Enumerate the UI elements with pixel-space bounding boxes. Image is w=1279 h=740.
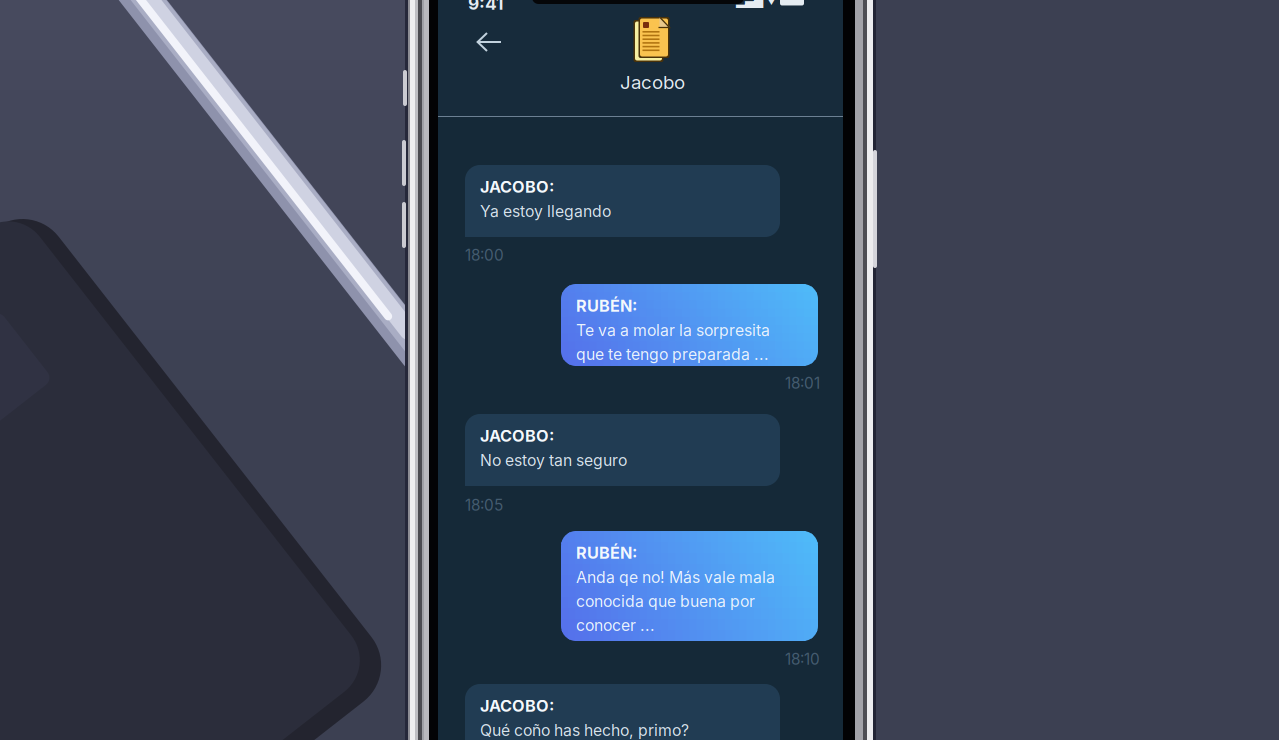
button[interactable]: RUBÉN: [561, 531, 818, 641]
staticText: conocer ... [576, 616, 655, 635]
staticText: Anda qe no! Más vale mala [576, 568, 775, 587]
staticText: 9:41 [468, 0, 503, 14]
staticText: No estoy tan seguro [480, 451, 627, 470]
staticText: Jacobo [620, 71, 685, 94]
staticText: JACOBO: [480, 426, 554, 446]
staticText: RUBÉN: [576, 543, 637, 563]
staticText: Ya estoy llegando [480, 202, 611, 221]
staticText: ▼ [766, 0, 777, 7]
staticText: Qué coño has hecho, primo? [480, 721, 689, 740]
button[interactable]: JACOBO: [465, 414, 780, 486]
button[interactable]: RUBÉN: [561, 284, 818, 366]
button[interactable]: JACOBO: [465, 165, 780, 237]
staticText: JACOBO: [480, 696, 554, 716]
staticText: JACOBO: [480, 177, 554, 197]
staticText: que te tengo preparada ... [576, 345, 769, 364]
staticText: Te va a molar la sorpresita [576, 321, 770, 340]
button[interactable]: Back [464, 20, 514, 64]
staticText: 18:05 [465, 496, 503, 515]
staticText: conocida que buena por [576, 592, 755, 611]
staticText: RUBÉN: [576, 296, 637, 316]
staticText: ▂▄▆ [736, 0, 763, 8]
staticText: 18:00 [465, 246, 504, 265]
staticText: 18:10 [785, 650, 820, 669]
button[interactable]: JACOBO: [465, 684, 780, 740]
staticText: 18:01 [785, 374, 820, 393]
